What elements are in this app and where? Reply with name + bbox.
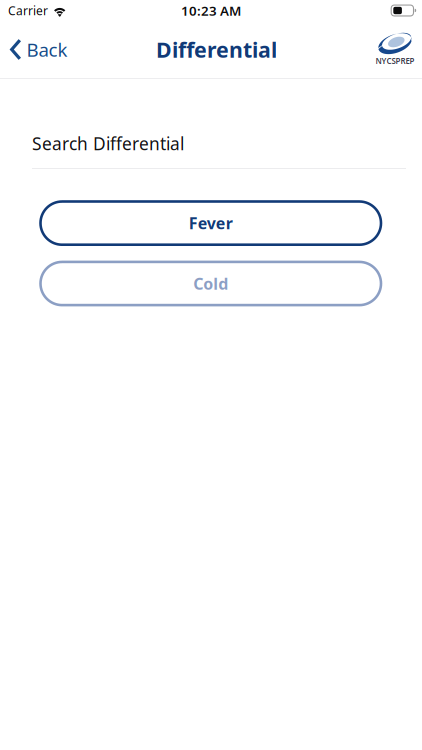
- staticText: Cold: [193, 273, 228, 294]
- staticText: Back: [26, 37, 67, 62]
- staticText: Search Differential: [32, 132, 184, 155]
- staticText: Differential: [156, 35, 277, 64]
- staticText: NYCSPREP: [375, 56, 414, 66]
- button[interactable]: Back: [0, 24, 79, 74]
- staticText: Fever: [189, 212, 233, 234]
- button[interactable]: Cold: [40, 262, 381, 305]
- staticText: Carrier: [8, 2, 48, 18]
- staticText: 10:23 AM: [181, 2, 241, 19]
- button[interactable]: Fever: [40, 201, 381, 245]
